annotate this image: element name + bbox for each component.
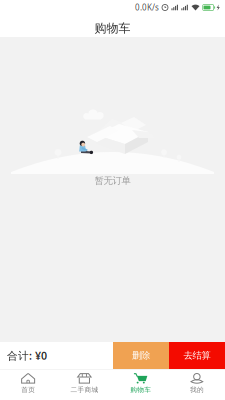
staticText: 0.0K/s	[135, 2, 159, 13]
staticText: 合计: ¥0	[7, 348, 47, 363]
staticText: 暂无订单	[94, 175, 130, 186]
staticText: 购物车	[94, 21, 130, 36]
button[interactable]: 二手商城	[56, 369, 112, 400]
button[interactable]: 我的	[169, 369, 225, 400]
staticText: 去结算	[183, 350, 210, 361]
staticText: 购物车	[130, 386, 151, 394]
staticText: 首页	[21, 386, 35, 394]
button[interactable]: 购物车	[112, 369, 169, 400]
button[interactable]: 去结算	[169, 342, 225, 369]
staticText: 删除	[132, 350, 150, 361]
staticText: 我的	[190, 386, 204, 394]
button[interactable]: 首页	[0, 369, 56, 400]
staticText: 二手商城	[70, 386, 98, 394]
button[interactable]: 删除	[113, 342, 169, 369]
